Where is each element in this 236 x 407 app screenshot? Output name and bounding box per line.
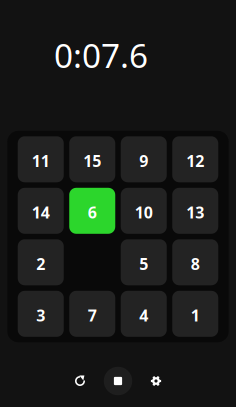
staticText: 8	[191, 253, 200, 274]
staticText: 5	[139, 253, 148, 274]
staticText: 7	[88, 305, 97, 326]
button[interactable]: 2	[18, 239, 64, 285]
button[interactable]: 14	[18, 188, 64, 234]
button[interactable]: 5	[121, 239, 167, 285]
staticText: 14	[32, 202, 50, 223]
button[interactable]: 13	[172, 188, 218, 234]
staticText: 6	[88, 202, 97, 223]
button[interactable]: 3	[18, 291, 64, 337]
staticText: 9	[139, 150, 148, 171]
staticText: 4	[139, 305, 148, 326]
button[interactable]: Settings	[137, 362, 175, 400]
button[interactable]: 10	[121, 188, 167, 234]
button[interactable]: 7	[69, 291, 115, 337]
staticText: 0:07.6	[54, 33, 148, 77]
staticText: 10	[135, 202, 153, 223]
button[interactable]: Stop	[99, 362, 137, 400]
button[interactable]: 12	[172, 136, 218, 182]
staticText: 12	[186, 150, 204, 171]
staticText: 15	[83, 150, 101, 171]
staticText: 3	[36, 305, 45, 326]
button[interactable]: 9	[121, 136, 167, 182]
button[interactable]: Restart	[61, 362, 99, 400]
button[interactable]: 15	[69, 136, 115, 182]
staticText: 2	[36, 253, 45, 274]
button[interactable]: 6	[69, 188, 115, 234]
button[interactable]: 1	[172, 291, 218, 337]
button[interactable]: 4	[121, 291, 167, 337]
staticText: 13	[186, 202, 204, 223]
button[interactable]: 11	[18, 136, 64, 182]
staticText: 11	[32, 150, 50, 171]
button[interactable]: 8	[172, 239, 218, 285]
staticText: 1	[191, 305, 200, 326]
